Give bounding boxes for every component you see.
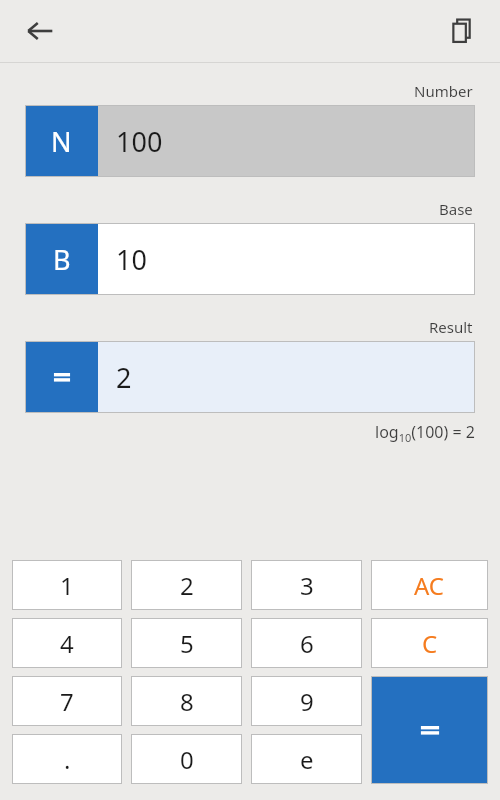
- button[interactable]: e: [251, 734, 362, 784]
- staticText: Base: [439, 199, 473, 219]
- button[interactable]: C: [371, 618, 488, 668]
- staticText: .: [64, 743, 71, 776]
- staticText: 7: [60, 685, 74, 718]
- staticText: 2: [116, 359, 132, 396]
- staticText: e: [300, 743, 314, 776]
- button[interactable]: .: [12, 734, 122, 784]
- button[interactable]: 4: [12, 618, 122, 668]
- staticText: 1: [60, 569, 74, 602]
- staticText: 100: [116, 123, 163, 160]
- staticText: 3: [300, 569, 314, 602]
- button[interactable]: 0: [131, 734, 242, 784]
- staticText: 8: [180, 685, 194, 718]
- staticText: 5: [180, 627, 194, 660]
- button[interactable]: N: [25, 105, 475, 177]
- button[interactable]: 7: [12, 676, 122, 726]
- staticText: AC: [414, 569, 445, 602]
- staticText: B: [53, 241, 71, 278]
- button[interactable]: 2: [131, 560, 242, 610]
- button[interactable]: 2: [25, 341, 475, 413]
- staticText: Result: [429, 317, 473, 337]
- staticText: log10(100) = 2: [375, 421, 475, 445]
- button[interactable]: B: [25, 223, 475, 295]
- staticText: N: [51, 123, 72, 160]
- button[interactable]: Copy: [438, 7, 486, 55]
- button[interactable]: Back: [14, 5, 66, 57]
- button[interactable]: 9: [251, 676, 362, 726]
- staticText: 0: [180, 743, 194, 776]
- button[interactable]: AC: [371, 560, 488, 610]
- button[interactable]: 8: [131, 676, 242, 726]
- button[interactable]: 3: [251, 560, 362, 610]
- staticText: 6: [300, 627, 314, 660]
- staticText: 9: [300, 685, 314, 718]
- staticText: Number: [414, 81, 473, 101]
- button[interactable]: 1: [12, 560, 122, 610]
- staticText: C: [422, 627, 438, 660]
- button[interactable]: 5: [131, 618, 242, 668]
- staticText: 10: [116, 241, 147, 278]
- staticText: 4: [60, 627, 74, 660]
- button[interactable]: Equals: [371, 676, 488, 784]
- button[interactable]: 6: [251, 618, 362, 668]
- staticText: 2: [180, 569, 194, 602]
